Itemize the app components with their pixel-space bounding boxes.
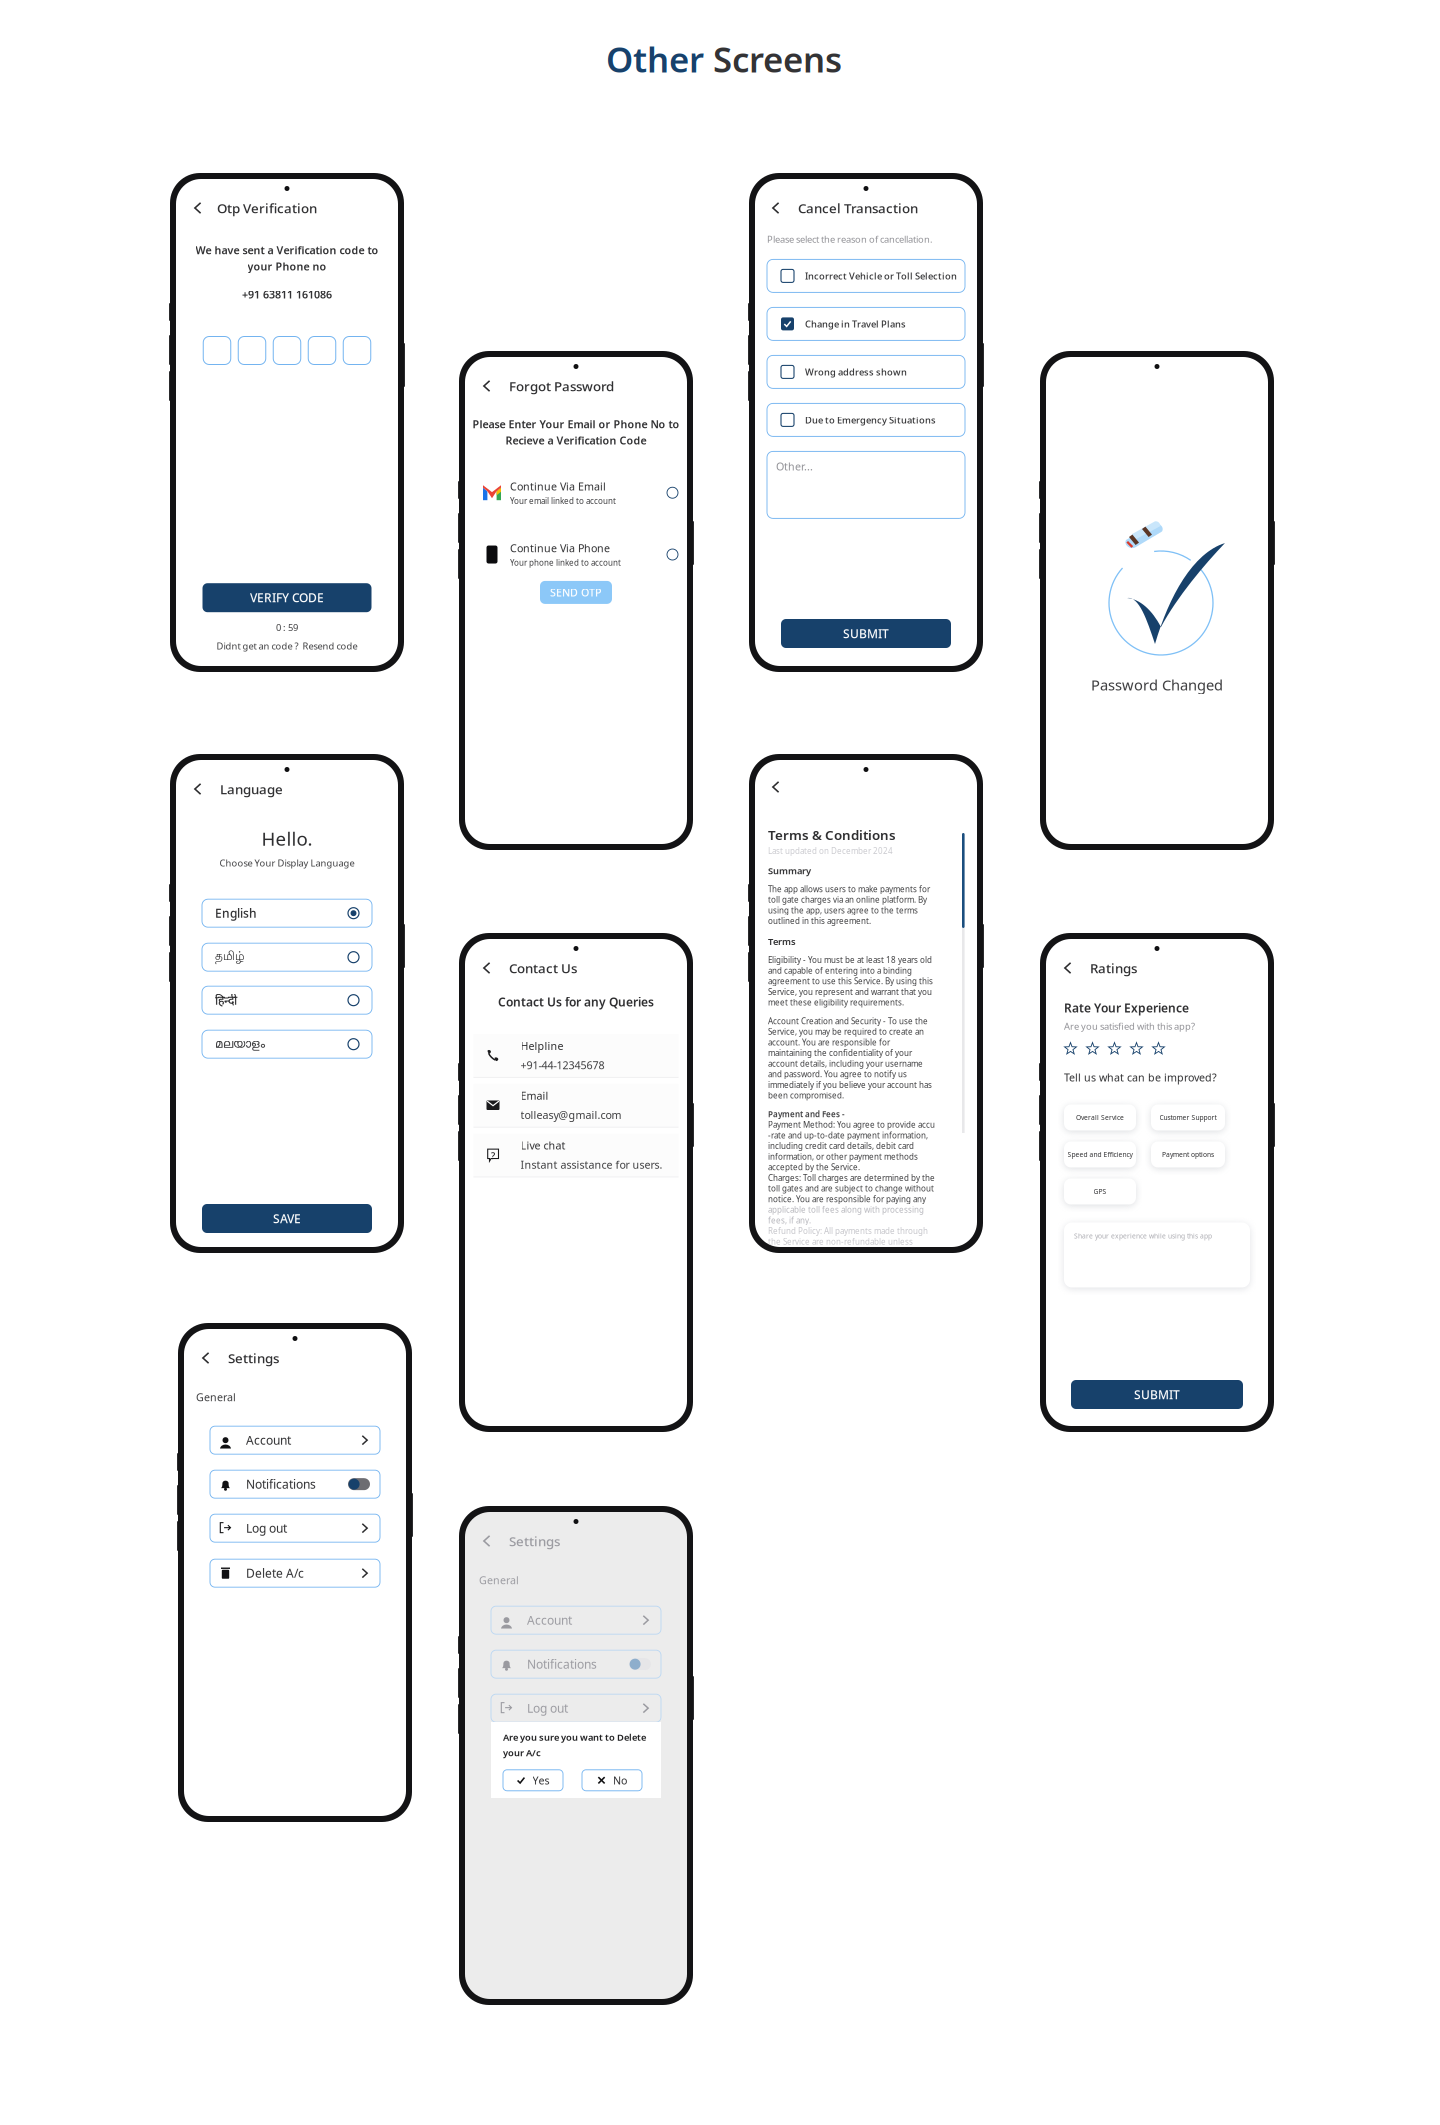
button[interactable]: Continue Via Phone: [474, 541, 678, 568]
staticText: Summary: [768, 864, 811, 877]
staticText: SEND OTP: [550, 585, 602, 599]
staticText: Are you satisfied with this app?: [1064, 1020, 1195, 1032]
staticText: We have sent a Verification code to: [195, 243, 378, 257]
staticText: Language: [220, 780, 283, 798]
staticText: Ratings: [1090, 959, 1137, 977]
staticText: Terms: [768, 935, 796, 948]
button[interactable]: Back: [188, 779, 208, 799]
staticText: Settings: [509, 1532, 560, 1550]
staticText: Other: [606, 36, 704, 82]
button[interactable]: Wrong address shown: [767, 355, 965, 388]
staticText: Continue Via Email: [510, 479, 606, 493]
button[interactable]: Didnt get an code ? Resend code: [216, 640, 357, 652]
staticText: Last updated on December 2024: [768, 846, 893, 856]
staticText: Notifications: [246, 1476, 316, 1492]
button[interactable]: No: [582, 1770, 642, 1791]
button[interactable]: Back: [766, 198, 786, 218]
button[interactable]: Log out: [210, 1514, 380, 1542]
button[interactable]: GPS: [1064, 1178, 1136, 1204]
staticText: Customer Support: [1159, 1113, 1216, 1122]
staticText: Choose Your Display Language: [219, 857, 354, 869]
staticText: Change in Travel Plans: [805, 318, 906, 330]
staticText: Account Creation and Security - To use t…: [768, 1016, 932, 1101]
button[interactable]: SUBMIT: [1071, 1380, 1243, 1409]
button[interactable]: Notifications: [491, 1650, 661, 1678]
button[interactable]: Back: [477, 376, 497, 396]
button[interactable]: Overall Service: [1064, 1104, 1136, 1130]
button[interactable]: SEND OTP: [540, 581, 612, 604]
staticText: Otp Verification: [217, 199, 317, 217]
staticText: Live chat: [520, 1138, 565, 1153]
staticText: +91 63811 161086: [242, 287, 332, 301]
staticText: Are you sure you want to Delete: [503, 1731, 646, 1743]
button[interactable]: Back: [1058, 958, 1078, 978]
staticText: Tell us what can be improved?: [1064, 1070, 1217, 1084]
staticText: Incorrect Vehicle or Toll Selection: [805, 270, 957, 282]
staticText: Notifications: [527, 1656, 597, 1672]
staticText: Contact Us: [509, 959, 577, 977]
button[interactable]: Speed and Efficiency: [1064, 1141, 1136, 1167]
staticText: Helpline: [520, 1039, 563, 1053]
button[interactable]: Account: [491, 1606, 661, 1634]
button[interactable]: Due to Emergency Situations: [767, 403, 965, 436]
staticText: Contact Us for any Queries: [498, 994, 654, 1010]
button[interactable]: Helpline: [473, 1034, 678, 1078]
staticText: Please Enter Your Email or Phone No to: [472, 417, 679, 431]
button[interactable]: Continue Via Email: [474, 479, 678, 506]
staticText: Screens: [704, 36, 842, 82]
button[interactable]: Back: [766, 777, 786, 797]
staticText: Due to Emergency Situations: [805, 414, 936, 426]
button[interactable]: Payment options: [1151, 1141, 1225, 1167]
staticText: Wrong address shown: [805, 366, 907, 378]
staticText: English: [215, 905, 257, 921]
staticText: Payment options: [1162, 1150, 1214, 1159]
staticText: Log out: [246, 1520, 287, 1536]
staticText: Yes: [532, 1773, 549, 1787]
button[interactable]: English: [202, 899, 372, 927]
staticText: 0 : 59: [276, 621, 298, 634]
staticText: tolleasy@gmail.com: [520, 1108, 621, 1122]
button[interactable]: Back: [477, 958, 497, 978]
staticText: Recieve a Verification Code: [505, 433, 646, 447]
button[interactable]: മലയാളം: [202, 1030, 372, 1058]
staticText: Terms & Conditions: [768, 826, 896, 844]
button[interactable]: Back: [196, 1348, 216, 1368]
button[interactable]: Account: [210, 1426, 380, 1454]
staticText: Overall Service: [1076, 1113, 1124, 1122]
button[interactable]: Change in Travel Plans: [767, 307, 965, 340]
button[interactable]: VERIFY CODE: [202, 583, 371, 612]
staticText: தமிழ்: [215, 950, 245, 964]
button[interactable]: Email: [473, 1084, 678, 1127]
button[interactable]: Back: [188, 198, 208, 218]
staticText: Forgot Password: [509, 377, 614, 395]
button[interactable]: Log out: [491, 1694, 661, 1722]
button[interactable]: SUBMIT: [781, 619, 951, 648]
staticText: മലയാളം: [215, 1038, 265, 1050]
button[interactable]: Customer Support: [1151, 1104, 1225, 1130]
staticText: Speed and Efficiency: [1067, 1150, 1132, 1159]
staticText: Other...: [776, 459, 813, 474]
button[interactable]: Delete A/c: [210, 1559, 380, 1587]
staticText: Payment and Fees -: [768, 1109, 845, 1119]
staticText: Email: [520, 1089, 548, 1103]
staticText: Charges: Toll charges are determined by …: [768, 1172, 935, 1204]
staticText: Account: [527, 1612, 572, 1628]
staticText: GPS: [1093, 1187, 1106, 1196]
button[interactable]: தமிழ்: [202, 943, 372, 971]
staticText: SAVE: [273, 1210, 301, 1226]
button[interactable]: SAVE: [202, 1204, 372, 1233]
staticText: Account: [246, 1432, 291, 1448]
staticText: +91-44-12345678: [520, 1058, 604, 1072]
staticText: Payment Method: You agree to provide acc…: [768, 1119, 935, 1172]
staticText: ?: [491, 1149, 495, 1162]
staticText: Continue Via Phone: [510, 541, 610, 555]
button[interactable]: ?: [473, 1133, 678, 1177]
staticText: The app allows users to make payments fo…: [768, 884, 930, 926]
button[interactable]: Notifications: [210, 1470, 380, 1498]
button[interactable]: Incorrect Vehicle or Toll Selection: [767, 259, 965, 292]
staticText: Rate Your Experience: [1064, 1000, 1189, 1016]
staticText: Didnt get an code ? Resend code: [216, 640, 357, 652]
button[interactable]: Yes: [503, 1770, 563, 1791]
staticText: applicable toll fees along with processi…: [768, 1204, 924, 1225]
button[interactable]: हिन्दी: [202, 986, 372, 1014]
